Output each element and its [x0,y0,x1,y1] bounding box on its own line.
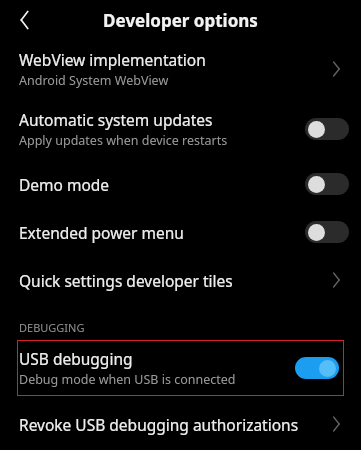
staticText: USB debugging [19,348,133,369]
other: Open [323,56,349,82]
other: Open [323,267,349,293]
button[interactable]: Quick settings developer tiles [0,256,361,304]
button[interactable] [305,118,349,140]
staticText: Revoke USB debugging authorizations [19,414,299,435]
staticText: Extended power menu [19,222,184,243]
button[interactable]: USB debugging [17,340,344,396]
staticText: Developer options [103,9,258,32]
button[interactable] [305,173,349,195]
button[interactable]: WebView implementation [0,40,361,98]
button[interactable]: Extended power menu [0,208,361,256]
staticText: Debug mode when USB is connected [19,371,236,388]
button[interactable]: Automatic system updates [0,98,361,160]
button[interactable]: Revoke USB debugging authorizations [0,402,361,446]
staticText: DEBUGGING [19,320,85,335]
staticText: Android System WebView [19,72,169,89]
staticText: Demo mode [19,174,110,195]
button[interactable] [305,221,349,243]
button[interactable] [295,357,339,379]
staticText: Quick settings developer tiles [19,270,233,291]
other: Open [323,411,349,437]
button[interactable]: Demo mode [0,160,361,208]
staticText: Automatic system updates [19,109,213,130]
button[interactable]: Back [8,3,42,37]
staticText: Apply updates when device restarts [19,132,228,149]
staticText: WebView implementation [19,49,206,70]
